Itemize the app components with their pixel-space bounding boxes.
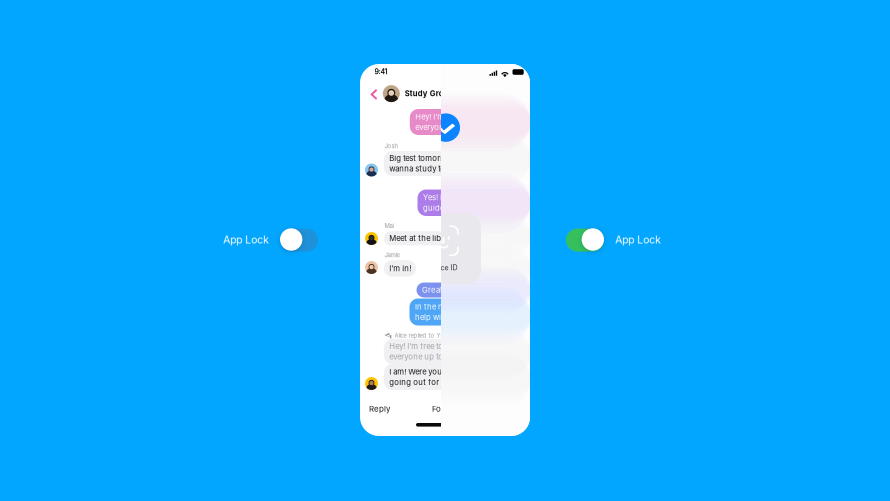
button[interactable]: Back [367, 86, 381, 102]
staticText: Big test tomorrow, [389, 154, 455, 163]
staticText: Jamie [384, 251, 399, 259]
staticText: 9:41 [374, 68, 387, 76]
staticText: everyone up to? [389, 352, 447, 361]
button[interactable]: Reply [369, 402, 405, 416]
staticText: Face ID [432, 263, 457, 272]
staticText: wanna study together? [389, 164, 473, 173]
staticText: App Lock [615, 233, 661, 246]
button[interactable]: Forward [432, 402, 474, 416]
staticText: Hey! I'm free tonight, what's [415, 112, 517, 121]
staticText: Mai [384, 222, 393, 229]
button[interactable]: App Lock, on [566, 228, 604, 252]
staticText: App Lock [223, 233, 269, 246]
button[interactable]: App Lock, off [280, 228, 318, 252]
staticText: everyone up to? [415, 123, 473, 132]
staticText: I'm in! [389, 264, 411, 273]
staticText: Great, see you there [422, 285, 496, 295]
staticText: help with flashcards [415, 313, 489, 322]
staticText: Study Group [405, 89, 454, 98]
staticText: Yes! I found a great study [423, 193, 518, 202]
staticText: guide online [423, 203, 469, 213]
staticText: Meet at the library at 4? [389, 234, 475, 243]
staticText: going out for dinner? [389, 378, 469, 387]
staticText: In the meantime I can [415, 302, 494, 311]
staticText: Forward [432, 404, 462, 414]
staticText: I am! Were you thinking of [389, 367, 485, 376]
staticText: Alice replied to You [394, 332, 447, 339]
staticText: Reply [369, 404, 390, 414]
staticText: Josh [384, 142, 398, 150]
staticText: Hey! I'm free tonight, what's [389, 342, 491, 351]
